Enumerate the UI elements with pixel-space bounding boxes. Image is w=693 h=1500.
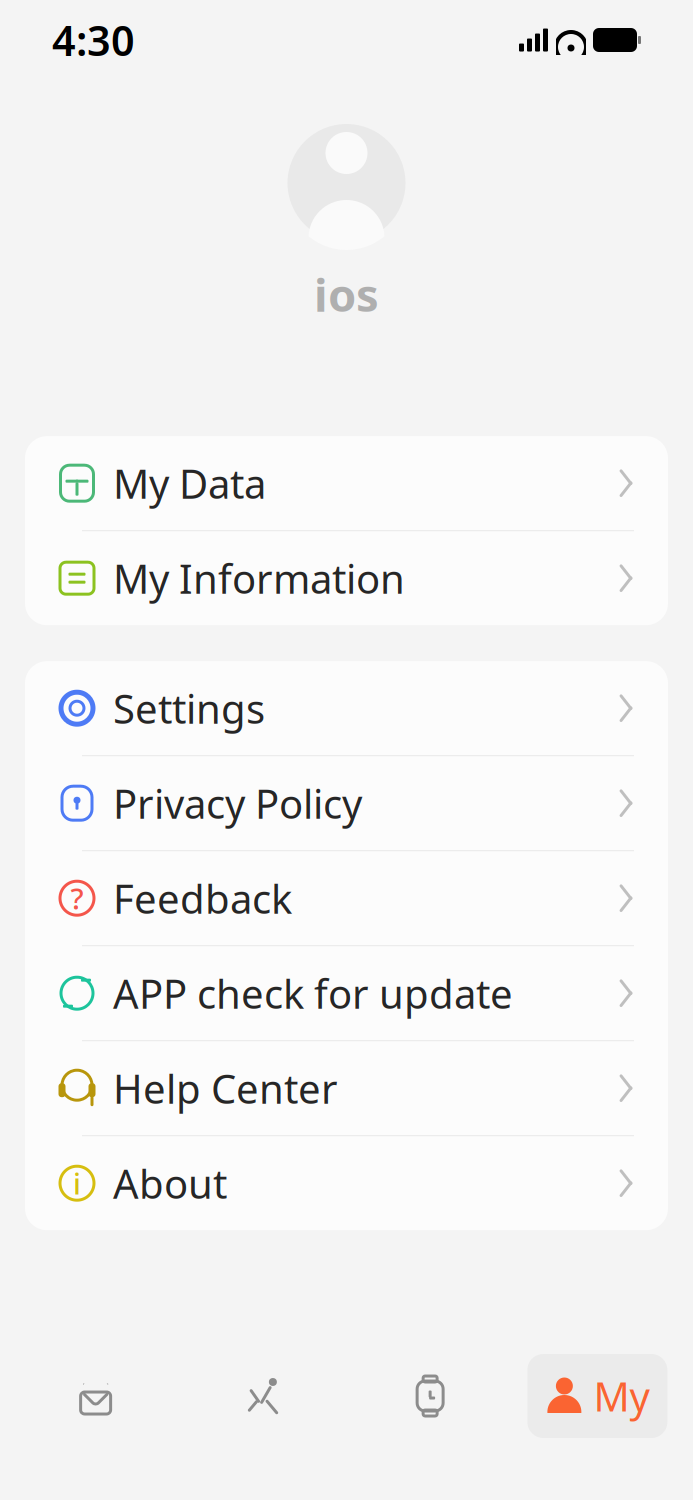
button[interactable]: Home [12, 1354, 179, 1438]
staticText: My [593, 1369, 649, 1422]
button[interactable]: i [25, 1136, 668, 1230]
staticText: ? [70, 879, 83, 918]
button[interactable]: Settings [25, 661, 668, 755]
button[interactable]: ? [25, 851, 668, 945]
staticText: Privacy Policy [113, 777, 362, 830]
button[interactable]: APP check for update [25, 946, 668, 1040]
button[interactable]: Activity [179, 1354, 346, 1438]
staticText: APP check for update [113, 967, 513, 1020]
staticText: My Data [113, 457, 266, 510]
staticText: Help Center [113, 1062, 338, 1115]
button[interactable]: Help Center [25, 1041, 668, 1135]
staticText: Settings [113, 682, 265, 735]
staticText: My Information [113, 552, 405, 605]
staticText: ios [314, 264, 379, 324]
staticText: Feedback [113, 872, 292, 925]
button[interactable]: My [527, 1354, 667, 1438]
button[interactable]: My Data [25, 436, 668, 530]
staticText: About [113, 1157, 227, 1210]
staticText: 4:30 [52, 13, 135, 67]
button[interactable]: My Information [25, 531, 668, 625]
staticText: i [73, 1164, 81, 1203]
button[interactable]: Privacy Policy [25, 756, 668, 850]
button[interactable]: Device [346, 1354, 514, 1438]
